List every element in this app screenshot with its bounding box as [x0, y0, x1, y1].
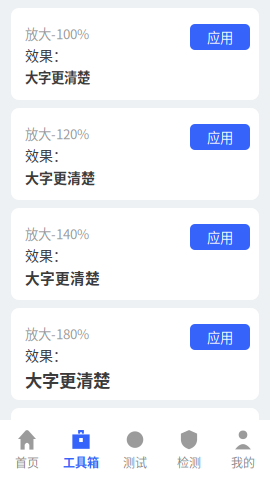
button[interactable]: 应用 — [190, 24, 250, 50]
staticText: 应用 — [207, 227, 233, 247]
staticText: 放大-140% — [25, 224, 89, 243]
button[interactable]: 应用 — [190, 224, 250, 250]
staticText: 测试 — [123, 454, 147, 471]
staticText: 应用 — [207, 327, 233, 347]
staticText: 效果： — [25, 145, 67, 165]
button[interactable]: 测试 — [108, 420, 162, 480]
staticText: 我的 — [231, 454, 255, 471]
staticText: 大字更清楚 — [25, 167, 95, 187]
button[interactable]: 工具箱 — [54, 420, 108, 480]
button[interactable]: 应用 — [190, 324, 250, 350]
staticText: 检测 — [177, 454, 201, 471]
button[interactable]: 检测 — [162, 420, 216, 480]
staticText: 大字更清楚 — [25, 367, 110, 392]
staticText: 应用 — [207, 127, 233, 147]
staticText: 效果： — [25, 245, 67, 265]
staticText: 首页 — [15, 454, 39, 471]
staticText: 工具箱 — [63, 454, 99, 471]
staticText: 效果： — [25, 345, 67, 365]
staticText: 效果： — [25, 45, 67, 65]
button[interactable]: 我的 — [216, 420, 270, 480]
staticText: 放大-180% — [25, 324, 89, 343]
button[interactable]: 应用 — [190, 124, 250, 150]
staticText: 放大-100% — [25, 24, 89, 43]
staticText: 大字更清楚 — [25, 67, 90, 86]
staticText: 应用 — [207, 27, 233, 47]
staticText: 放大-120% — [25, 124, 89, 143]
staticText: 大字更清楚 — [25, 267, 100, 288]
button[interactable]: 首页 — [0, 420, 54, 480]
